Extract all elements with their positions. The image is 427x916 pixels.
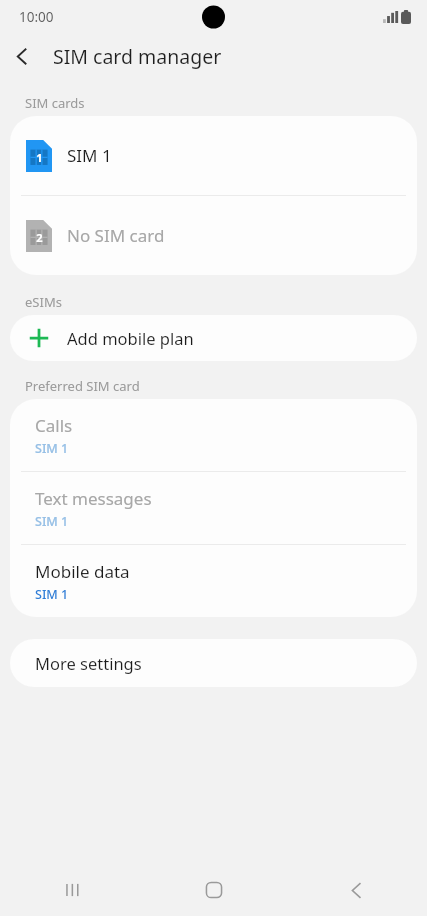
staticText: 10:00 [19,8,54,26]
staticText: SIM cards [25,94,85,112]
button[interactable]: Mobile data [10,545,417,617]
button[interactable]: Back [285,864,427,916]
staticText: SIM 1 [35,586,69,603]
staticText: Text messages [35,487,152,510]
button[interactable]: 2 [10,196,417,275]
button[interactable]: Recent apps [0,864,143,916]
staticText: SIM 1 [35,440,69,457]
button[interactable]: 1 [10,116,417,195]
staticText: 2 [36,230,43,245]
staticText: Preferred SIM card [25,377,140,395]
staticText: Add mobile plan [67,327,194,349]
staticText: SIM card manager [53,43,222,70]
staticText: 1 [36,150,43,165]
button[interactable]: Text messages [10,472,417,544]
button[interactable]: Add mobile plan [10,315,417,361]
button[interactable]: More settings [10,639,417,687]
button[interactable]: Home [143,864,285,916]
staticText: No SIM card [67,224,165,247]
staticText: eSIMs [25,293,62,311]
button[interactable]: Calls [10,399,417,471]
staticText: SIM 1 [67,144,112,167]
staticText: Calls [35,414,73,437]
staticText: More settings [35,652,142,674]
button[interactable]: Navigate up [0,34,44,78]
staticText: SIM 1 [35,513,69,530]
staticText: Mobile data [35,560,130,583]
